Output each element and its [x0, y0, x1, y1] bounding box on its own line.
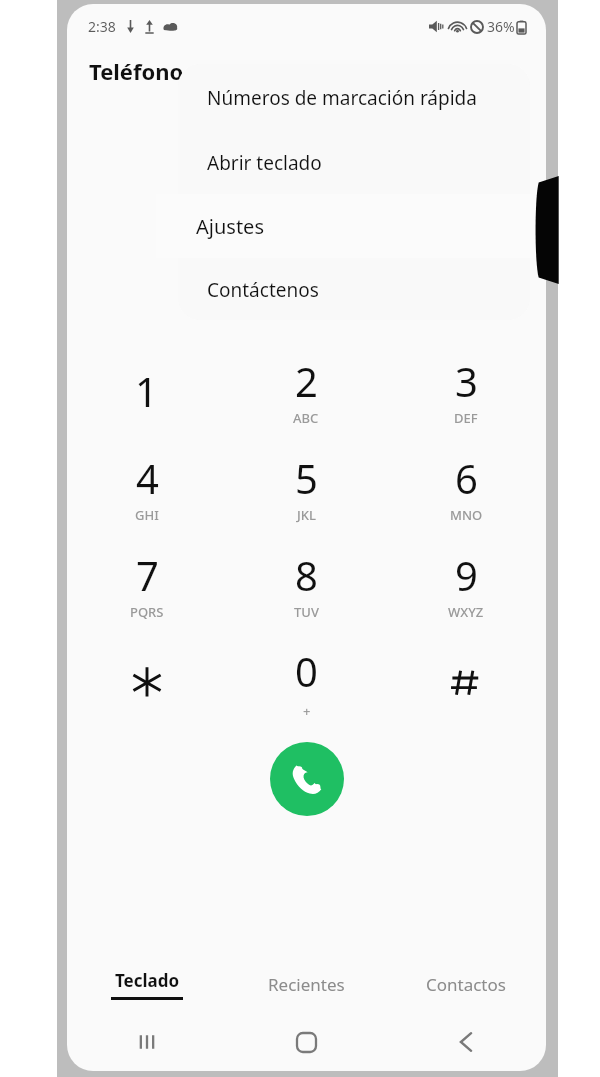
staticText: 4 [136, 451, 159, 505]
button[interactable]: 4 [67, 439, 226, 536]
staticText: 0 [295, 644, 318, 698]
button[interactable]: 5 [226, 439, 386, 536]
staticText: + [303, 702, 311, 720]
button[interactable]: 1 [67, 342, 226, 439]
staticText: JKL [297, 506, 316, 524]
staticText: TUV [294, 603, 319, 621]
staticText: Contactos [426, 973, 506, 996]
button[interactable]: Home [226, 1013, 386, 1071]
staticText: 6 [455, 451, 478, 505]
staticText: 2 [295, 354, 318, 408]
button[interactable]: 9 [386, 536, 546, 633]
staticText: 1 [135, 364, 158, 418]
staticText: 7 [136, 548, 159, 602]
staticText: Recientes [268, 973, 345, 996]
staticText: 8 [295, 548, 318, 602]
button[interactable] [67, 633, 226, 730]
staticText: 9 [455, 548, 478, 602]
staticText: Contáctenos [207, 277, 319, 303]
staticText: Números de marcación rápida [207, 85, 477, 111]
staticText: MNO [450, 506, 483, 524]
button[interactable]: 0 [226, 633, 386, 730]
staticText: Teléfono [89, 56, 184, 86]
staticText: ABC [293, 409, 319, 427]
button[interactable]: 8 [226, 536, 386, 633]
staticText: 3 [455, 354, 478, 408]
button[interactable]: Call [270, 742, 344, 816]
button[interactable]: Teclado [67, 955, 226, 1013]
button[interactable]: 6 [386, 439, 546, 536]
button[interactable]: Recent apps [67, 1013, 226, 1071]
staticText: WXYZ [448, 603, 484, 621]
staticText: Abrir teclado [207, 150, 322, 176]
staticText: GHI [135, 506, 159, 524]
staticText: PQRS [130, 603, 164, 621]
button[interactable]: 3 [386, 342, 546, 439]
staticText: 36% [487, 17, 515, 36]
staticText: DEF [454, 409, 478, 427]
staticText: Teclado [115, 969, 180, 992]
staticText: Ajustes [196, 213, 264, 240]
button[interactable]: Números de marcación rápida [178, 64, 530, 132]
button[interactable]: Contactos [386, 955, 546, 1013]
button[interactable]: Ajustes [156, 194, 546, 258]
button[interactable]: Recientes [226, 955, 386, 1013]
button[interactable]: Back [386, 1013, 546, 1071]
button[interactable]: Contáctenos [178, 260, 530, 320]
button[interactable]: 2 [226, 342, 386, 439]
staticText: 2:38 [88, 17, 116, 36]
button[interactable] [386, 633, 546, 730]
staticText: 5 [295, 451, 318, 505]
button[interactable]: Abrir teclado [178, 132, 530, 194]
button[interactable]: 7 [67, 536, 226, 633]
